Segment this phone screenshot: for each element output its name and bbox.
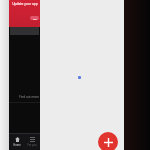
button[interactable]: Home bbox=[9, 134, 24, 150]
staticText: Find out more bbox=[19, 95, 39, 99]
staticText: OK bbox=[33, 17, 37, 20]
button[interactable]: Next app bbox=[124, 0, 150, 150]
button[interactable]: Update your app bbox=[9, 0, 40, 27]
staticText: Update your app bbox=[12, 2, 38, 6]
button[interactable]: OK bbox=[30, 16, 39, 20]
button[interactable]: Create bbox=[98, 132, 118, 150]
button[interactable]: For you bbox=[24, 134, 40, 150]
staticText: Home bbox=[13, 143, 21, 147]
button[interactable]: Create bbox=[40, 0, 124, 150]
staticText: For you bbox=[27, 143, 37, 147]
button[interactable]: Update your app bbox=[9, 0, 40, 150]
